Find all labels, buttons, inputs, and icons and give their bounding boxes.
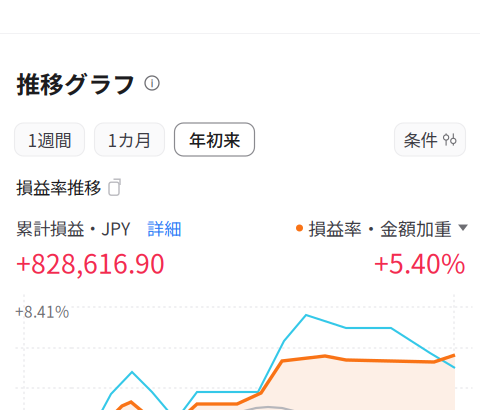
button[interactable]: 1カ月 (94, 123, 164, 156)
staticText: 累計損益・JPY (16, 215, 130, 241)
staticText: 損益率・金額加重 (308, 215, 452, 241)
staticText: 1カ月 (107, 127, 151, 152)
button[interactable]: 詳細 (130, 215, 181, 241)
staticText: i (150, 75, 153, 90)
button[interactable]: 条件 (394, 123, 465, 156)
staticText: 年初来 (189, 127, 240, 152)
button[interactable]: 年初来 (174, 123, 254, 156)
staticText: 推移グラフ (16, 66, 136, 100)
staticText: 詳細 (147, 215, 181, 241)
button[interactable]: 1週間 (14, 123, 84, 156)
staticText: +8.41% (15, 300, 69, 322)
staticText: 1週間 (27, 127, 71, 152)
button[interactable]: 損益率・金額加重 (296, 215, 468, 241)
staticText: +5.40% (374, 243, 466, 281)
staticText: +828,616.90 (16, 243, 165, 281)
button[interactable]: Info (145, 76, 159, 90)
staticText: 条件 (403, 127, 437, 152)
staticText: 損益率推移 (16, 174, 101, 200)
button[interactable]: Copy (109, 178, 123, 196)
